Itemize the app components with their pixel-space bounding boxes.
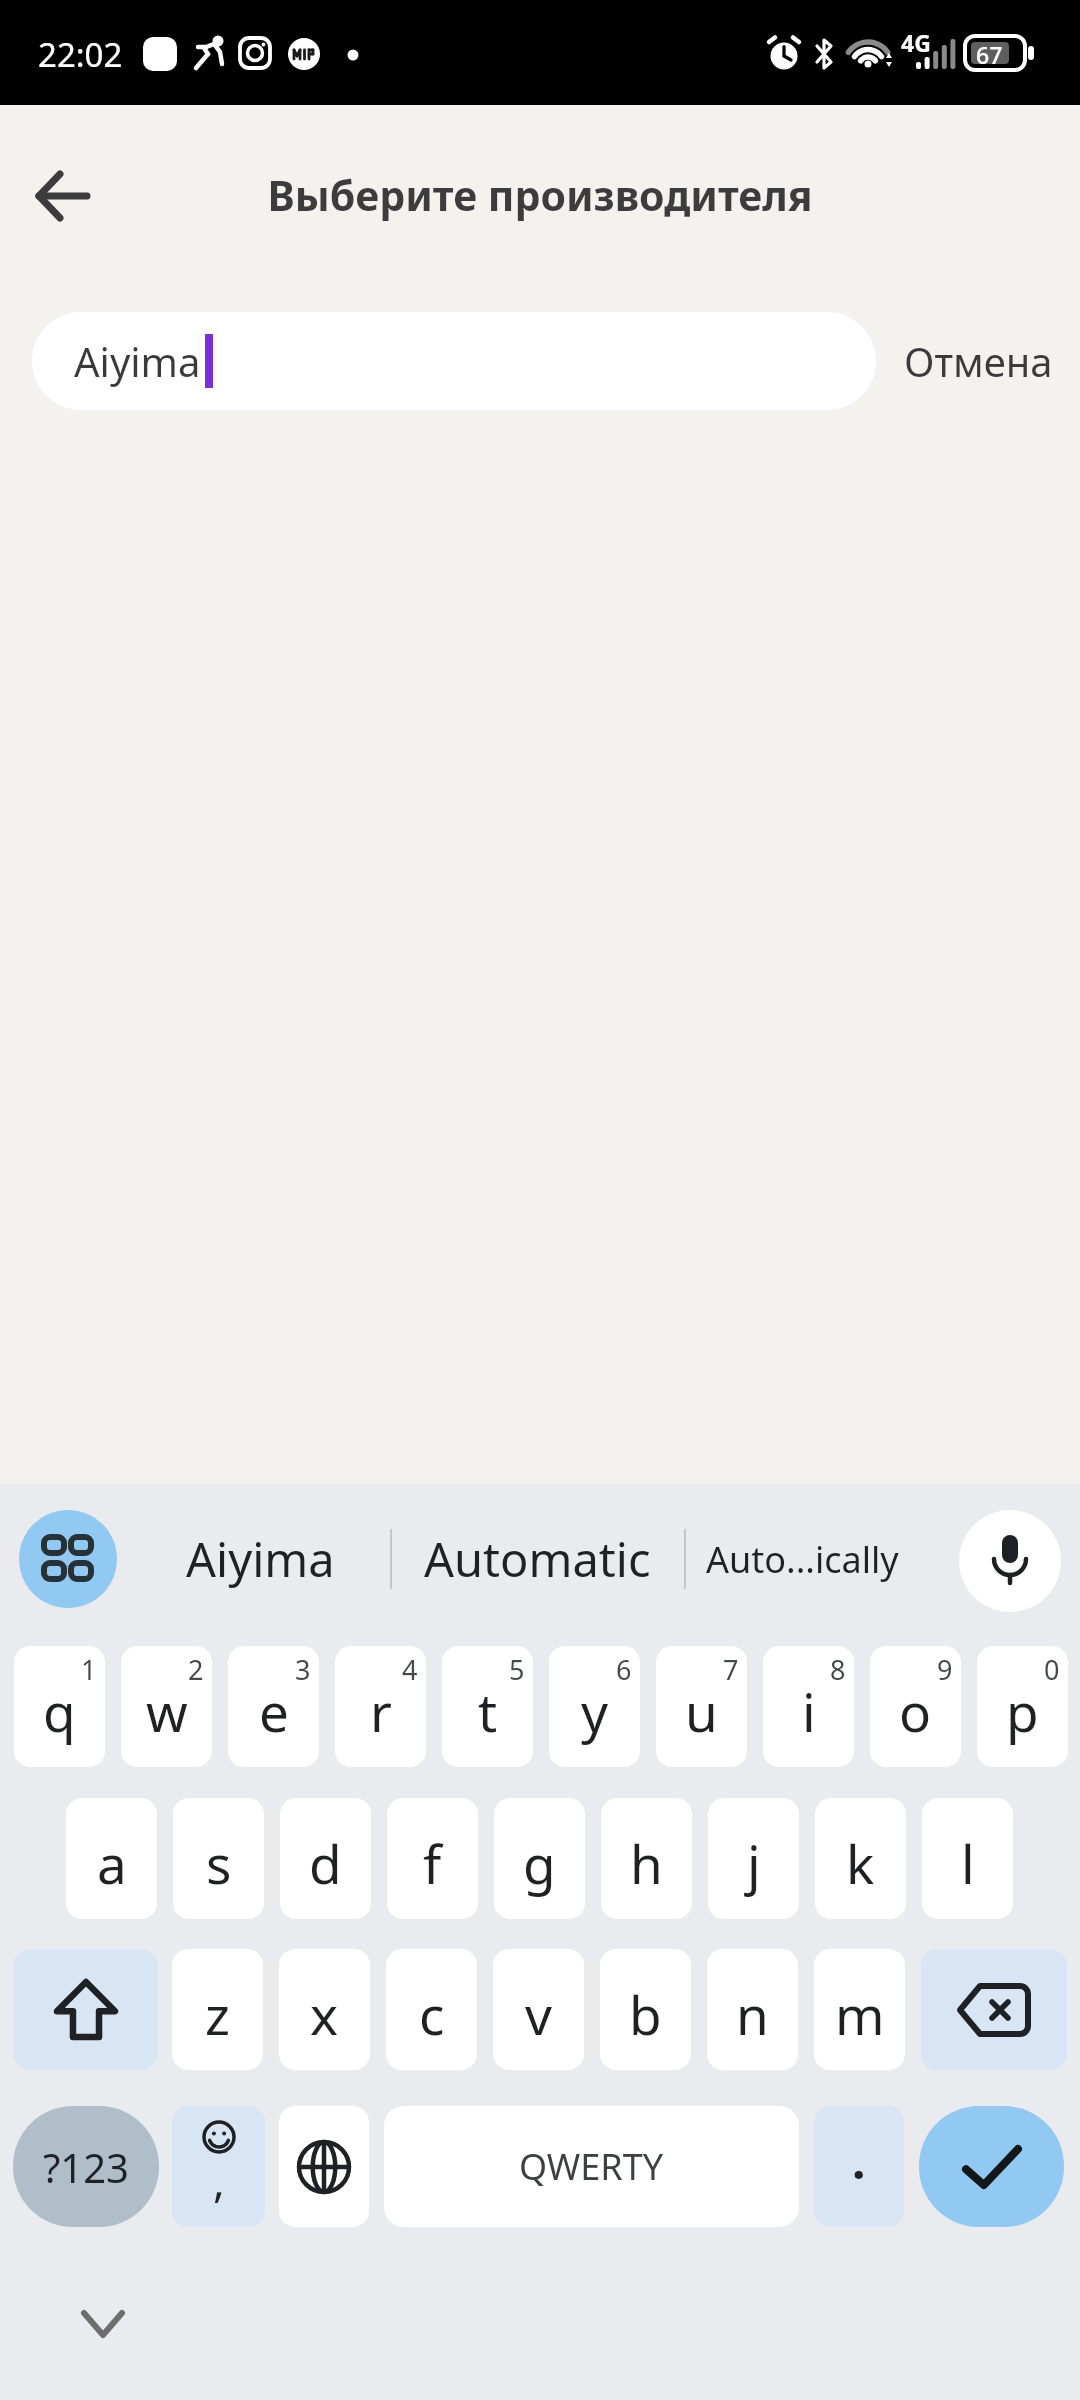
- staticText: QWERTY: [519, 2142, 664, 2191]
- button[interactable]: Auto...ically: [696, 1510, 908, 1608]
- button[interactable]: [20, 153, 106, 239]
- button[interactable]: q: [14, 1646, 105, 1767]
- button[interactable]: a: [66, 1798, 157, 1919]
- button[interactable]: [919, 2106, 1064, 2227]
- staticText: n: [736, 1978, 769, 2050]
- button[interactable]: [279, 2106, 369, 2227]
- staticText: a: [97, 1827, 127, 1899]
- staticText: v: [525, 1978, 552, 2050]
- staticText: u: [685, 1675, 718, 1747]
- staticText: d: [309, 1827, 342, 1899]
- staticText: s: [206, 1827, 232, 1899]
- staticText: r: [370, 1675, 392, 1747]
- staticText: c: [419, 1978, 445, 2050]
- staticText: f: [423, 1827, 442, 1899]
- button[interactable]: Отмена: [876, 312, 1080, 410]
- button[interactable]: c: [386, 1949, 477, 2070]
- button[interactable]: e: [228, 1646, 319, 1767]
- button[interactable]: n: [707, 1949, 798, 2070]
- button[interactable]: ,: [172, 2106, 265, 2227]
- staticText: ?123: [43, 2140, 129, 2194]
- button[interactable]: [84, 2313, 122, 2335]
- button[interactable]: d: [280, 1798, 371, 1919]
- button[interactable]: m: [814, 1949, 905, 2070]
- staticText: b: [629, 1978, 662, 2050]
- staticText: 9: [937, 1651, 953, 1688]
- button[interactable]: v: [493, 1949, 584, 2070]
- staticText: 3: [295, 1651, 311, 1688]
- button[interactable]: w: [121, 1646, 212, 1767]
- button[interactable]: b: [600, 1949, 691, 2070]
- button[interactable]: s: [173, 1798, 264, 1919]
- button[interactable]: ?123: [13, 2106, 159, 2227]
- staticText: Отмена: [904, 334, 1053, 388]
- button[interactable]: k: [815, 1798, 906, 1919]
- staticText: h: [630, 1827, 663, 1899]
- button[interactable]: r: [335, 1646, 426, 1767]
- staticText: Aiyima: [186, 1527, 335, 1591]
- staticText: 8: [830, 1651, 846, 1688]
- staticText: 6: [616, 1651, 632, 1688]
- button[interactable]: f: [387, 1798, 478, 1919]
- button[interactable]: z: [172, 1949, 263, 2070]
- staticText: 5: [509, 1651, 525, 1688]
- staticText: p: [1006, 1675, 1039, 1747]
- button[interactable]: QWERTY: [384, 2106, 799, 2227]
- button[interactable]: y: [549, 1646, 640, 1767]
- button[interactable]: [959, 1510, 1061, 1612]
- staticText: 2: [188, 1651, 204, 1688]
- staticText: w: [146, 1675, 188, 1747]
- button[interactable]: u: [656, 1646, 747, 1767]
- button[interactable]: l: [922, 1798, 1013, 1919]
- button[interactable]: [14, 1949, 158, 2070]
- staticText: k: [846, 1827, 875, 1899]
- button[interactable]: t: [442, 1646, 533, 1767]
- button[interactable]: Aiyima: [140, 1510, 380, 1608]
- staticText: Auto...ically: [706, 1535, 899, 1584]
- staticText: 4: [402, 1651, 418, 1688]
- staticText: Выберите производителя: [0, 167, 1080, 223]
- staticText: x: [310, 1978, 339, 2050]
- staticText: 22:02: [38, 32, 123, 77]
- staticText: e: [259, 1675, 289, 1747]
- staticText: m: [835, 1978, 885, 2050]
- button[interactable]: i: [763, 1646, 854, 1767]
- staticText: ,: [213, 2150, 225, 2210]
- button[interactable]: o: [870, 1646, 961, 1767]
- button[interactable]: g: [494, 1798, 585, 1919]
- staticText: 7: [723, 1651, 739, 1688]
- button[interactable]: j: [708, 1798, 799, 1919]
- staticText: 1: [81, 1651, 97, 1688]
- staticText: l: [961, 1827, 975, 1899]
- button[interactable]: .: [814, 2106, 904, 2227]
- staticText: 0: [1044, 1651, 1060, 1688]
- button[interactable]: [19, 1510, 117, 1608]
- staticText: o: [899, 1675, 932, 1747]
- staticText: g: [523, 1827, 556, 1899]
- staticText: Automatic: [424, 1527, 651, 1591]
- staticText: 4G: [901, 27, 931, 58]
- button[interactable]: x: [279, 1949, 370, 2070]
- staticText: z: [205, 1978, 230, 2050]
- button[interactable]: [921, 1949, 1067, 2070]
- button[interactable]: Aiyima: [32, 312, 876, 410]
- staticText: i: [802, 1675, 816, 1747]
- staticText: .: [852, 2128, 866, 2193]
- staticText: t: [478, 1675, 498, 1747]
- button[interactable]: p: [977, 1646, 1068, 1767]
- staticText: Aiyima: [74, 334, 201, 388]
- staticText: y: [581, 1675, 609, 1747]
- staticText: q: [43, 1675, 76, 1747]
- staticText: j: [747, 1827, 761, 1899]
- staticText: 67: [976, 39, 1003, 70]
- button[interactable]: h: [601, 1798, 692, 1919]
- button[interactable]: Automatic: [402, 1510, 672, 1608]
